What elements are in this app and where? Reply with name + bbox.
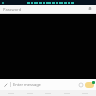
button[interactable]: Emoji [77,81,84,88]
button[interactable]: Password [0,5,96,13]
button[interactable]: Compose [2,81,9,88]
staticText: Password [3,7,87,12]
button[interactable]: Send [85,82,94,88]
button[interactable]: Enter message [13,82,76,87]
button[interactable]: Account [87,6,93,12]
